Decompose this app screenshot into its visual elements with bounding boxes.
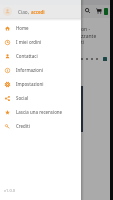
staticText: Social: [16, 95, 29, 101]
staticText: ti: [81, 39, 85, 46]
staticText: Ciao,: [18, 9, 29, 15]
button[interactable]: Social: [0, 91, 81, 105]
staticText: accedi: [31, 9, 45, 15]
button[interactable]: Home: [0, 21, 81, 35]
staticText: I miei ordini: [16, 39, 42, 45]
button[interactable]: Ciao,: [0, 5, 81, 18]
staticText: on -: [81, 26, 91, 33]
staticText: Home: [16, 25, 29, 31]
button[interactable]: I miei ordini: [0, 35, 81, 49]
staticText: Informazioni: [16, 67, 43, 73]
staticText: Crediti: [16, 123, 30, 129]
button[interactable]: Lascia una recensione: [0, 105, 81, 119]
staticText: Impostazioni: [16, 81, 44, 87]
button[interactable]: Offers: [104, 8, 108, 15]
staticText: zzante: [81, 33, 97, 40]
button[interactable]: Cart: [94, 6, 103, 15]
button[interactable]: Search: [83, 6, 92, 15]
button[interactable]: Contattaci: [0, 49, 81, 63]
button[interactable]: Impostazioni: [0, 77, 81, 91]
staticText: Lascia una recensione: [16, 109, 63, 115]
staticText: Contattaci: [16, 53, 38, 59]
button[interactable]: Informazioni: [0, 63, 81, 77]
staticText: v1.0.0: [4, 188, 16, 193]
button[interactable]: Crediti: [0, 119, 81, 133]
